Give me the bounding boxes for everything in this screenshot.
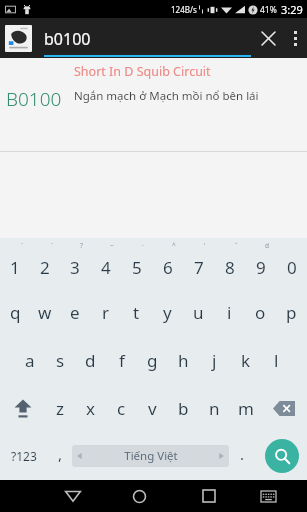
staticText: x: [86, 397, 95, 420]
staticText: 124B/s: [171, 4, 197, 15]
staticText: ,: [58, 444, 63, 464]
button[interactable]: v: [137, 384, 168, 432]
button[interactable]: t: [121, 288, 152, 336]
staticText: .: [240, 444, 245, 464]
staticText: d: [85, 349, 96, 372]
staticText: ~: [110, 241, 114, 250]
staticText: 8: [225, 256, 235, 279]
button[interactable]: e: [60, 288, 90, 336]
staticText: `: [21, 241, 23, 250]
button[interactable]: .: [229, 432, 256, 480]
staticText: w: [38, 301, 52, 324]
button[interactable]: Shift: [0, 384, 45, 432]
staticText: 1: [10, 256, 20, 279]
staticText: Ngắn mạch ở Mạch mồi nổ bên lái: [74, 88, 259, 104]
button[interactable]: n: [199, 384, 230, 432]
button[interactable]: Home: [103, 480, 176, 512]
button[interactable]: y: [152, 288, 183, 336]
staticText: 9: [256, 256, 266, 279]
button[interactable]: j: [199, 336, 230, 384]
staticText: m: [238, 397, 254, 420]
staticText: Short In D Squib Circuit: [74, 63, 211, 80]
button[interactable]: ^: [152, 240, 183, 288]
button[interactable]: Backspace: [261, 384, 307, 432]
staticText: l: [274, 349, 279, 372]
staticText: b: [178, 397, 189, 420]
button[interactable]: Back: [42, 480, 103, 512]
button[interactable]: App icon: [5, 25, 32, 52]
staticText: 3:29: [281, 2, 303, 17]
button[interactable]: Short In D Squib Circuit: [0, 58, 307, 151]
button[interactable]: p: [276, 288, 307, 336]
staticText: Tiếng Việt: [124, 448, 178, 464]
staticText: 0: [287, 256, 297, 279]
button[interactable]: ,: [48, 432, 72, 480]
staticText: ˘: [235, 241, 238, 250]
button[interactable]: x: [75, 384, 106, 432]
button[interactable]: k: [230, 336, 261, 384]
button[interactable]: u: [183, 288, 214, 336]
button[interactable]: ´: [30, 240, 60, 288]
button[interactable]: d: [75, 336, 106, 384]
staticText: ·: [142, 241, 144, 250]
staticText: z: [56, 397, 64, 420]
staticText: ': [204, 241, 206, 250]
button[interactable]: 0: [276, 240, 307, 288]
button[interactable]: m: [230, 384, 261, 432]
button[interactable]: d: [245, 240, 276, 288]
staticText: h: [178, 349, 189, 372]
staticText: s: [56, 349, 65, 372]
button[interactable]: ': [183, 240, 214, 288]
button[interactable]: More options: [285, 18, 305, 58]
button[interactable]: b: [168, 384, 199, 432]
staticText: ´: [51, 241, 53, 250]
button[interactable]: z: [45, 384, 75, 432]
staticText: q: [10, 301, 21, 324]
button[interactable]: w: [30, 288, 60, 336]
staticText: u: [193, 301, 204, 324]
button[interactable]: q: [0, 288, 30, 336]
button[interactable]: i: [214, 288, 245, 336]
staticText: ?123: [11, 448, 37, 464]
button[interactable]: ·: [121, 240, 152, 288]
staticText: j: [212, 349, 217, 372]
button[interactable]: r: [90, 288, 121, 336]
staticText: p: [286, 301, 297, 324]
button[interactable]: l: [261, 336, 292, 384]
button[interactable]: ?: [60, 240, 90, 288]
button[interactable]: h: [168, 336, 199, 384]
staticText: k: [241, 349, 251, 372]
staticText: ^: [172, 241, 176, 250]
staticText: 2: [40, 256, 50, 279]
button[interactable]: `: [0, 240, 30, 288]
staticText: ?: [80, 241, 83, 250]
button[interactable]: o: [245, 288, 276, 336]
button[interactable]: c: [106, 384, 137, 432]
staticText: 4: [101, 256, 111, 279]
staticText: B0100: [6, 86, 62, 112]
button[interactable]: ˘: [214, 240, 245, 288]
button[interactable]: Recent apps: [176, 480, 241, 512]
button[interactable]: f: [106, 336, 137, 384]
button[interactable]: g: [137, 336, 168, 384]
staticText: 7: [194, 256, 204, 279]
button[interactable]: ?123: [0, 432, 48, 480]
staticText: b0100: [44, 28, 91, 50]
staticText: r: [102, 301, 110, 324]
staticText: g: [147, 349, 158, 372]
button[interactable]: ~: [90, 240, 121, 288]
staticText: 3: [70, 256, 80, 279]
button[interactable]: Tiếng Việt: [72, 445, 229, 467]
button[interactable]: s: [45, 336, 75, 384]
staticText: y: [163, 301, 172, 324]
staticText: v: [148, 397, 157, 420]
button[interactable]: Switch keyboard: [241, 480, 295, 512]
button[interactable]: Search: [265, 439, 299, 473]
staticText: d: [265, 241, 269, 250]
staticText: 41%: [260, 4, 277, 16]
button[interactable]: a: [15, 336, 45, 384]
button[interactable]: Clear query: [251, 21, 285, 55]
staticText: n: [209, 397, 220, 420]
staticText: c: [117, 397, 126, 420]
staticText: t: [133, 301, 140, 324]
